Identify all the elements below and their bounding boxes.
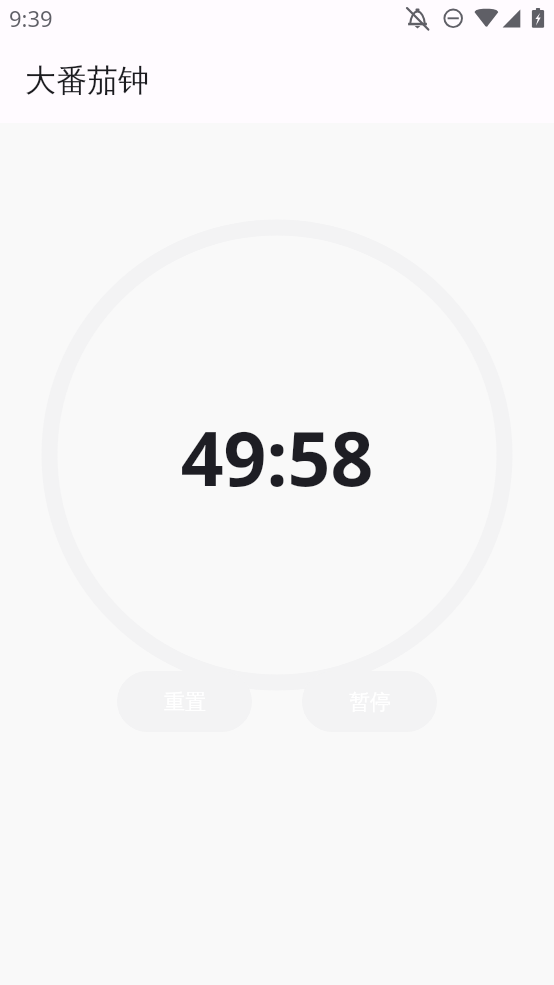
staticText: 49:58 bbox=[0, 406, 554, 508]
staticText: 重置 bbox=[164, 689, 206, 715]
staticText: 暂停 bbox=[349, 689, 391, 715]
staticText: 大番茄钟 bbox=[25, 61, 149, 100]
staticText: 9:39 bbox=[9, 3, 53, 33]
